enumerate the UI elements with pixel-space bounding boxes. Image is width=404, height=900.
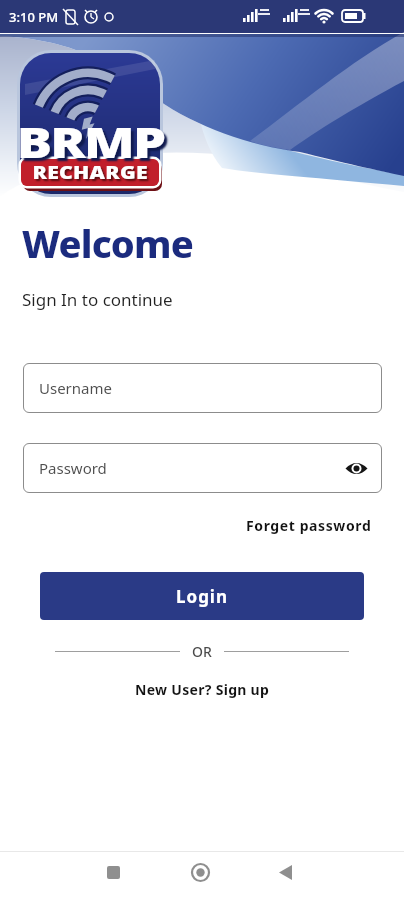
staticText: BRMP bbox=[17, 112, 164, 171]
staticText: Welcome bbox=[22, 217, 193, 269]
button[interactable]: Forget password bbox=[0, 516, 372, 535]
button[interactable]: New User? Sign up bbox=[0, 680, 404, 699]
staticText: Username bbox=[39, 378, 112, 398]
button[interactable]: Password bbox=[23, 443, 382, 493]
staticText: Sign In to continue bbox=[22, 288, 173, 311]
button[interactable]: Login bbox=[40, 572, 364, 620]
staticText: Password bbox=[39, 458, 107, 478]
button[interactable]: Username bbox=[23, 363, 382, 413]
button[interactable] bbox=[269, 851, 404, 900]
button[interactable] bbox=[0, 851, 134, 900]
staticText: OR bbox=[192, 642, 212, 661]
staticText: 3:10 PM bbox=[9, 8, 59, 26]
button[interactable] bbox=[134, 851, 269, 900]
staticText: RECHARGE bbox=[32, 161, 149, 184]
staticText: Forget password bbox=[246, 516, 372, 535]
staticText: New User? Sign up bbox=[135, 680, 270, 699]
staticText: Login bbox=[176, 585, 229, 608]
